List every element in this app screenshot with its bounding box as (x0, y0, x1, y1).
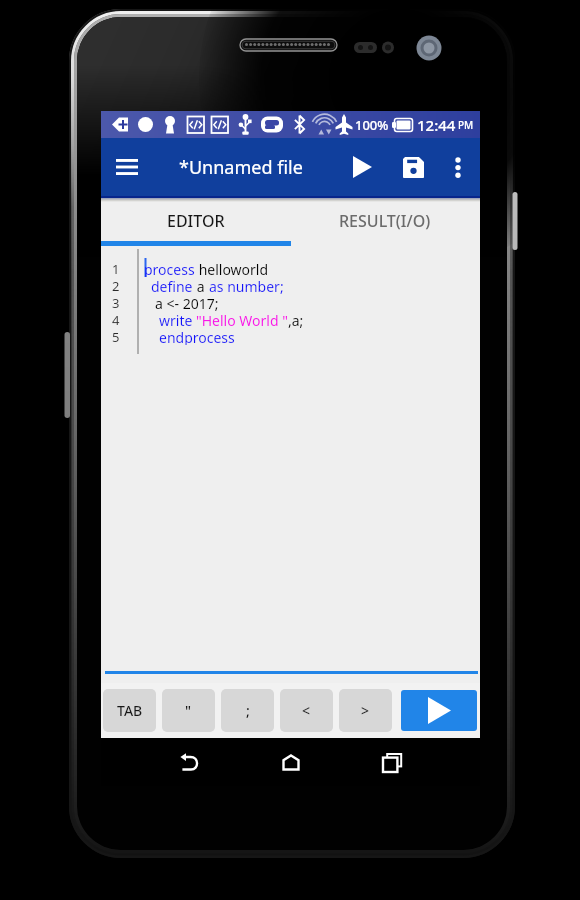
button[interactable]: Run (336, 138, 388, 196)
staticText: TAB (117, 701, 143, 720)
staticText: process (144, 260, 195, 277)
staticText: as number; (209, 277, 284, 294)
button[interactable]: RESULT(I/O) (290, 196, 480, 246)
staticText: 3 (112, 294, 120, 311)
staticText: 12:44 (417, 115, 456, 135)
staticText: *Unnamed file (179, 155, 303, 180)
staticText: endprocess (159, 328, 235, 345)
staticText: " (185, 701, 192, 720)
button[interactable]: ; (221, 689, 274, 732)
button[interactable]: Back (139, 738, 240, 786)
button[interactable]: Home (240, 738, 341, 786)
staticText: 2 (112, 277, 120, 294)
staticText: helloworld (195, 260, 269, 277)
button[interactable]: Save (388, 138, 439, 196)
button[interactable]: Open navigation menu (101, 138, 153, 196)
staticText: 1 (112, 260, 120, 277)
staticText: RESULT(I/O) (339, 210, 431, 232)
staticText: write (159, 311, 196, 328)
staticText: 5 (112, 328, 120, 345)
button[interactable]: < (280, 689, 333, 732)
staticText: 100% (355, 116, 389, 134)
staticText: 4 (112, 311, 120, 328)
button[interactable]: " (162, 689, 215, 732)
staticText: > (361, 701, 370, 720)
staticText: < (302, 701, 311, 720)
staticText: ; (246, 701, 250, 720)
staticText: a <- 2017; (155, 294, 219, 311)
button[interactable]: TAB (103, 689, 156, 732)
staticText: "Hello World " (196, 311, 288, 328)
staticText: define (151, 277, 193, 294)
button[interactable]: More options (439, 138, 477, 196)
button[interactable]: Recent apps (341, 738, 442, 786)
button[interactable]: Run program (401, 690, 477, 731)
button[interactable]: EDITOR (101, 196, 290, 246)
staticText: a (193, 277, 209, 294)
staticText: EDITOR (167, 210, 225, 232)
staticText: PM (458, 118, 474, 132)
staticText: ,a; (288, 311, 304, 328)
button[interactable]: > (339, 689, 392, 732)
